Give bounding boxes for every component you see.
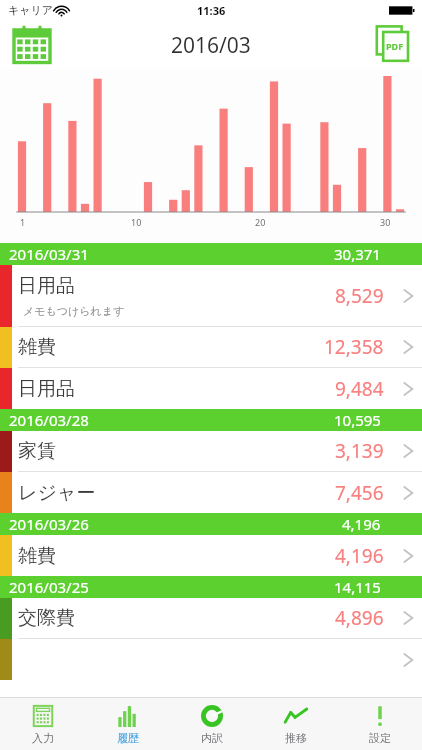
button[interactable]: 2016/03/26 [0, 513, 422, 535]
staticText: 8,529 [335, 283, 384, 309]
staticText: 12,358 [324, 334, 384, 360]
staticText: 10,595 [334, 410, 381, 430]
button[interactable]: 内訳 [170, 698, 254, 750]
staticText: 1 [20, 216, 26, 228]
staticText: 2016/03/25 [9, 577, 89, 597]
button[interactable]: 2016/03/28 [0, 409, 422, 431]
staticText: 履歴 [117, 731, 139, 745]
button[interactable]: 2016/03/25 [0, 576, 422, 598]
staticText: 9,484 [335, 376, 384, 402]
staticText: 11:36 [197, 3, 226, 18]
staticText: 30 [380, 216, 391, 228]
staticText: 2016/03/31 [9, 244, 89, 264]
staticText: キャリア [8, 3, 54, 17]
button[interactable]: Calendar [10, 22, 54, 66]
staticText: 設定 [369, 731, 391, 745]
staticText: 2016/03/26 [9, 514, 89, 534]
button[interactable]: Export PDF [370, 22, 414, 66]
button[interactable] [0, 639, 422, 680]
staticText: 雑費 [18, 544, 56, 568]
button[interactable]: 推移 [254, 698, 338, 750]
staticText: 入力 [32, 731, 54, 745]
button[interactable]: 交際費 [0, 598, 422, 639]
staticText: 10 [131, 216, 142, 228]
staticText: 4,196 [342, 514, 381, 534]
staticText: 7,456 [335, 480, 384, 506]
button[interactable]: 家賃 [0, 431, 422, 472]
button[interactable]: レジャー [0, 472, 422, 513]
button[interactable]: 履歴 [85, 698, 170, 750]
button[interactable]: 日用品 [0, 368, 422, 409]
button[interactable]: 設定 [338, 698, 422, 750]
staticText: 日用品 [18, 377, 75, 401]
staticText: 30,371 [334, 244, 381, 264]
staticText: 2016/03/28 [9, 410, 89, 430]
staticText: 交際費 [18, 606, 75, 630]
staticText: メモもつけられます [23, 304, 125, 318]
button[interactable]: 雑費 [0, 327, 422, 368]
staticText: 4,896 [335, 605, 384, 631]
button[interactable]: 雑費 [0, 535, 422, 576]
button[interactable]: 日用品 [0, 265, 422, 327]
staticText: 雑費 [18, 335, 56, 359]
staticText: 20 [255, 216, 266, 228]
staticText: PDF [386, 40, 404, 52]
staticText: レジャー [18, 481, 96, 505]
staticText: 3,139 [335, 438, 384, 464]
button[interactable]: 2016/03/31 [0, 243, 422, 265]
staticText: 推移 [285, 731, 307, 745]
staticText: 2016/03 [171, 31, 251, 60]
staticText: 日用品 [18, 274, 75, 298]
staticText: 家賃 [18, 439, 56, 463]
button[interactable]: 入力 [0, 698, 85, 750]
staticText: 4,196 [335, 543, 384, 569]
staticText: 内訳 [201, 731, 223, 745]
staticText: 14,115 [334, 577, 381, 597]
